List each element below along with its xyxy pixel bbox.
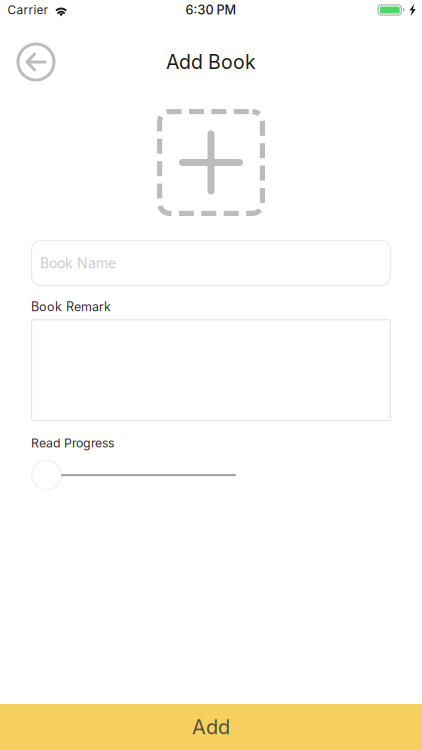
button[interactable]: Add	[0, 704, 422, 750]
staticText: Read Progress	[31, 436, 114, 450]
staticText: Book Name	[40, 254, 116, 271]
staticText: Add Book	[166, 50, 256, 74]
button[interactable]: Add cover photo	[157, 109, 265, 216]
staticText: Book Remark	[31, 299, 111, 314]
staticText: Carrier	[7, 3, 47, 17]
staticText: 6:30 PM	[185, 2, 236, 18]
staticText: Add	[192, 715, 230, 739]
button[interactable]: Back	[12, 38, 60, 86]
